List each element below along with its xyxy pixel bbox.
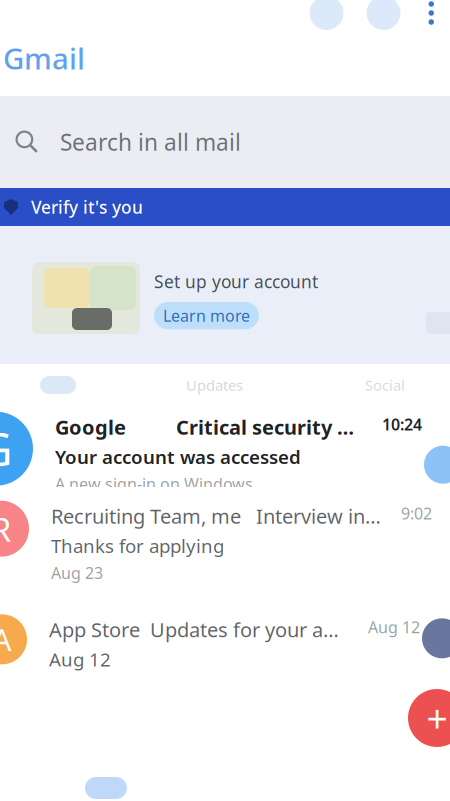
button[interactable]: Join a meeting (366, 0, 400, 30)
button[interactable]: Compose (408, 689, 450, 747)
button[interactable]: Mail (78, 777, 134, 801)
button[interactable]: A (0, 591, 450, 685)
staticText: Social (365, 375, 405, 395)
button[interactable]: More options (428, 1, 434, 25)
staticText: 9:02 (401, 503, 432, 524)
button[interactable]: Social (365, 375, 450, 395)
staticText: Updates (186, 375, 243, 395)
staticText: G (0, 419, 12, 479)
staticText: Learn more (163, 305, 250, 326)
staticText: Gmail (3, 38, 85, 77)
staticText: Verify it's you (31, 195, 143, 218)
staticText: Recruiting Team, me Interview invitation (51, 503, 383, 529)
staticText: Aug 23 (51, 562, 103, 583)
staticText: R (0, 507, 11, 551)
button[interactable]: Start a video meeting (309, 0, 343, 30)
button[interactable]: G (0, 406, 450, 487)
staticText: A (0, 619, 12, 660)
button[interactable]: Verify it's you (0, 188, 450, 226)
staticText: Your account was accessed (55, 444, 301, 469)
staticText: Aug 12 (368, 616, 420, 637)
button[interactable]: Updates (186, 375, 255, 395)
button[interactable]: R (0, 487, 450, 591)
staticText: Search in all mail (60, 127, 241, 157)
staticText: A new sign-in on Windows (55, 473, 253, 494)
button[interactable]: Search in all mail (0, 96, 450, 188)
staticText: + (426, 693, 447, 743)
staticText: Thanks for applying (51, 533, 224, 558)
button[interactable]: Primary (0, 376, 76, 394)
staticText: Aug 12 (49, 647, 111, 672)
staticText: Set up your account (154, 270, 318, 293)
staticText: 10:24 (382, 414, 422, 435)
staticText: App Store Updates for your apps (49, 616, 350, 643)
staticText: Google Critical security alert (55, 414, 364, 440)
button[interactable]: Learn more (154, 302, 259, 329)
